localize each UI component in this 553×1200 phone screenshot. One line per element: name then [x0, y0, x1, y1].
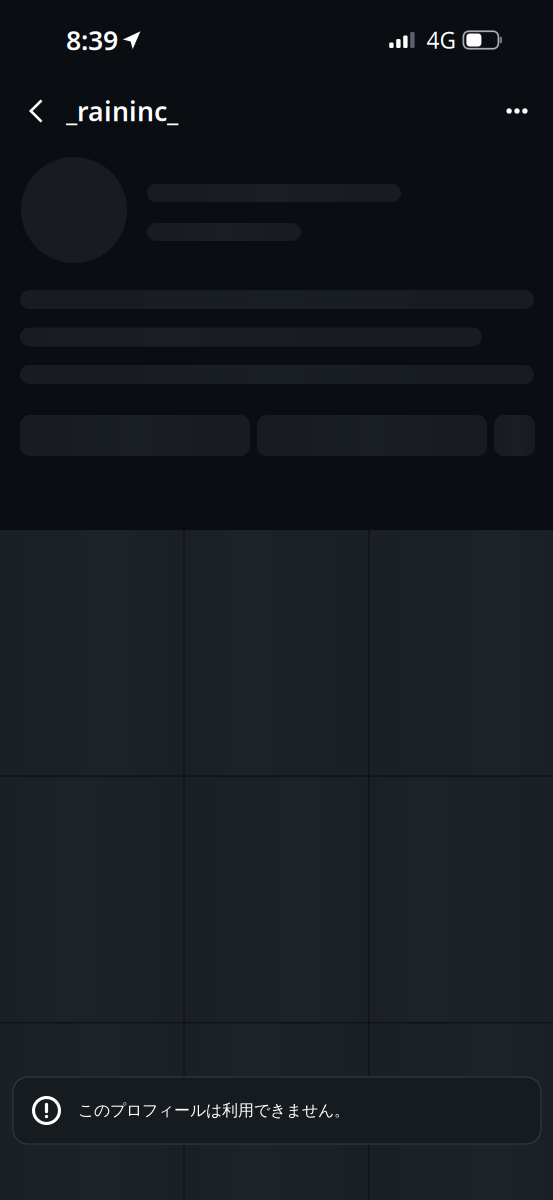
button[interactable]: Post	[0, 1023, 183, 1200]
staticText: このプロフィールは利用できません。	[78, 1101, 350, 1120]
button[interactable]: Back	[12, 83, 60, 139]
button[interactable]: Post	[185, 1023, 368, 1200]
staticText: 8:39	[66, 22, 118, 58]
staticText: 4G	[426, 25, 456, 55]
button[interactable]: More options	[495, 83, 539, 139]
button[interactable]: Post	[370, 1023, 553, 1200]
staticText: _raininc_	[66, 93, 178, 129]
button[interactable]: _raininc_	[60, 83, 178, 139]
